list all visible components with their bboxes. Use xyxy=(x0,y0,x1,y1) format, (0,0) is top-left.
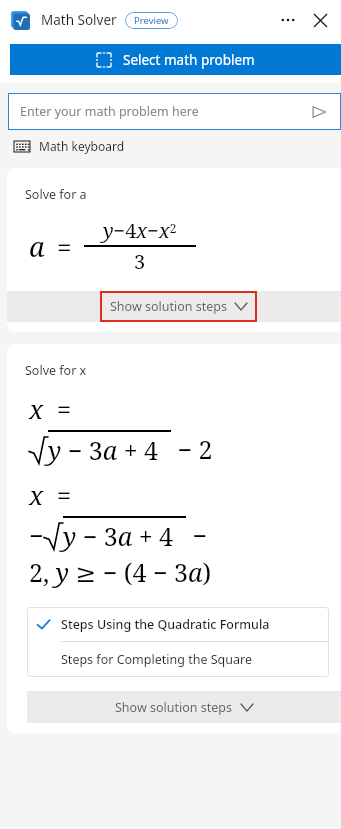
staticText: Enter your math problem here xyxy=(20,103,199,120)
button[interactable]: Close xyxy=(307,7,333,33)
staticText: Steps for Completing the Square xyxy=(61,651,252,668)
staticText: 3 xyxy=(134,248,146,275)
button[interactable]: Submit xyxy=(309,102,329,122)
staticText: 2, y ≥ − (4 − 3a) xyxy=(29,555,212,589)
staticText: Show solution steps xyxy=(115,699,232,716)
button[interactable]: Show solution steps xyxy=(27,691,341,723)
button[interactable]: Steps for Completing the Square xyxy=(27,642,329,677)
button[interactable]: Math keyboard xyxy=(14,138,125,154)
button[interactable]: Show solution steps xyxy=(110,291,247,322)
staticText: − xyxy=(186,518,207,552)
staticText: x = xyxy=(29,477,72,512)
staticText: − xyxy=(29,518,44,552)
staticText: a xyxy=(29,228,45,265)
staticText: y − 3a + 4 xyxy=(48,433,159,467)
staticText: Math keyboard xyxy=(39,138,125,154)
staticText: Math Solver xyxy=(41,11,117,29)
button[interactable]: More options xyxy=(275,7,301,33)
staticText: Select math problem xyxy=(123,51,255,69)
staticText: Solve for x xyxy=(25,362,87,379)
staticText: = xyxy=(57,229,72,264)
button[interactable]: Preview xyxy=(125,12,178,29)
staticText: y − 3a + 4 xyxy=(63,519,174,553)
staticText: y−4x−x2 xyxy=(103,217,177,244)
staticText: Solve for a xyxy=(25,186,87,203)
staticText: x = xyxy=(29,391,72,426)
staticText: − 2 xyxy=(171,432,213,466)
button[interactable]: Select math problem xyxy=(10,44,341,75)
button[interactable]: Enter your math problem here xyxy=(8,93,341,130)
staticText: Steps Using the Quadratic Formula xyxy=(61,616,270,633)
staticText: Preview xyxy=(134,14,169,27)
button[interactable] xyxy=(7,291,341,322)
staticText: Show solution steps xyxy=(110,298,227,315)
button[interactable]: Steps Using the Quadratic Formula xyxy=(27,607,329,641)
